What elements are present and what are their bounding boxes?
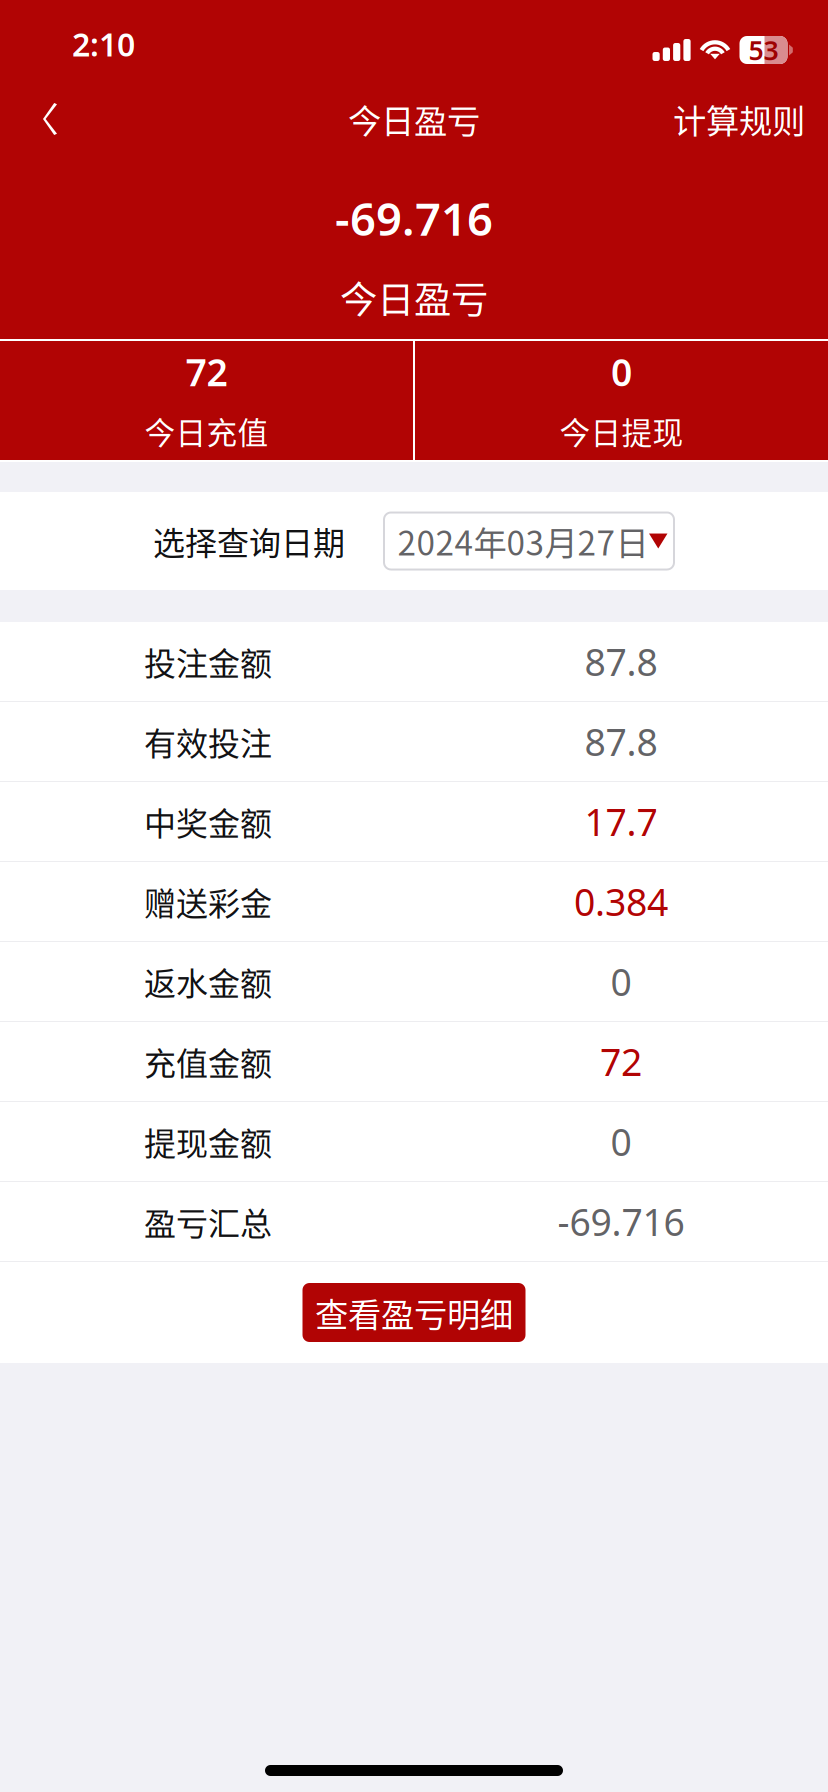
button[interactable]: Back <box>0 88 110 150</box>
staticText: 今日盈亏 <box>348 95 480 143</box>
button[interactable]: 查看盈亏明细 <box>302 1283 525 1342</box>
button[interactable]: 返水金额 <box>0 942 828 1022</box>
staticText: 今日盈亏 <box>340 270 488 324</box>
staticText: 中奖金额 <box>144 798 272 845</box>
staticText: 投注金额 <box>144 638 272 685</box>
button[interactable]: 投注金额 <box>0 622 828 702</box>
staticText: 87.8 <box>584 717 657 766</box>
staticText: 计算规则 <box>673 95 805 143</box>
button[interactable]: 充值金额 <box>0 1022 828 1102</box>
button[interactable]: 2024年03月27日 <box>384 512 674 569</box>
staticText: 盈亏汇总 <box>144 1198 272 1245</box>
staticText: 2024年03月27日 <box>397 517 648 565</box>
staticText: 赠送彩金 <box>144 878 272 925</box>
button[interactable]: 计算规则 <box>628 88 828 150</box>
staticText: 0 <box>611 347 632 397</box>
staticText: -69.716 <box>335 188 493 248</box>
button[interactable]: 赠送彩金 <box>0 862 828 942</box>
staticText: 0 <box>610 957 631 1006</box>
staticText: 查看盈亏明细 <box>315 1288 513 1337</box>
staticText: 今日提现 <box>559 409 683 453</box>
staticText: 返水金额 <box>144 958 272 1005</box>
staticText: 提现金额 <box>144 1118 272 1165</box>
button[interactable]: 72 <box>0 341 413 460</box>
staticText: 2:10 <box>72 23 135 65</box>
staticText: 17.7 <box>584 797 657 846</box>
staticText: 今日充值 <box>144 409 268 453</box>
staticText: -69.716 <box>557 1197 684 1246</box>
button[interactable]: 提现金额 <box>0 1102 828 1182</box>
button[interactable]: 盈亏汇总 <box>0 1182 828 1262</box>
staticText: 87.8 <box>584 637 657 686</box>
button[interactable]: 中奖金额 <box>0 782 828 862</box>
staticText: 72 <box>185 347 227 397</box>
staticText: 有效投注 <box>144 718 272 765</box>
button[interactable]: 0 <box>415 341 828 460</box>
staticText: 0.384 <box>574 877 668 926</box>
staticText: 53 <box>748 32 778 68</box>
button[interactable]: 有效投注 <box>0 702 828 782</box>
staticText: 充值金额 <box>144 1038 272 1085</box>
staticText: 0 <box>610 1117 631 1166</box>
staticText: 72 <box>600 1037 642 1086</box>
staticText: 选择查询日期 <box>153 518 345 564</box>
